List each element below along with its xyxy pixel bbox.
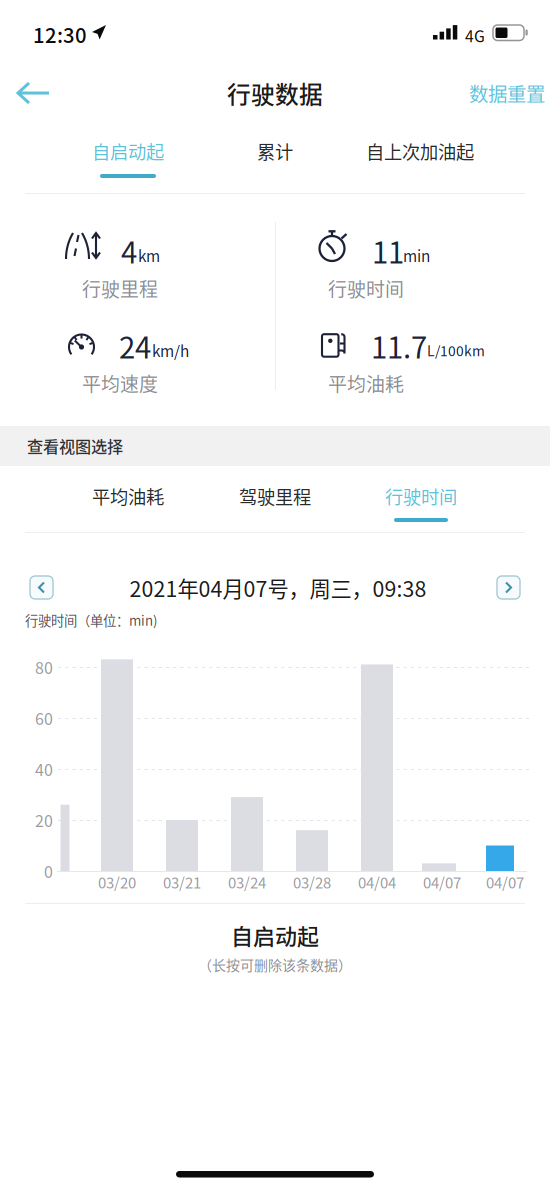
staticText: 行驶时间（单位：min) — [25, 610, 158, 630]
staticText: 03/21 — [163, 871, 201, 893]
staticText: 平均油耗 — [328, 370, 404, 397]
staticText: 2021年04月07号，周三，09:38 — [129, 572, 426, 603]
button[interactable]: 上一条数据 — [30, 576, 53, 599]
staticText: 24 — [119, 324, 151, 367]
staticText: 04/07 — [423, 871, 461, 893]
staticText: 03/20 — [98, 871, 136, 893]
staticText: L/100km — [427, 340, 485, 360]
staticText: 4G — [465, 24, 485, 47]
staticText: 03/28 — [293, 871, 331, 893]
staticText: 行驶时间 — [385, 483, 457, 509]
button[interactable]: 数据重置 — [469, 73, 547, 113]
button[interactable]: 行驶时间 — [0, 0, 220, 45]
button[interactable]: 自启动起 — [0, 0, 220, 46]
button[interactable]: 下一条数据 — [497, 576, 520, 599]
staticText: 04/04 — [358, 871, 396, 893]
button[interactable]: 平均油耗 — [0, 0, 220, 45]
staticText: 40 — [35, 757, 53, 781]
staticText: 60 — [35, 706, 53, 730]
staticText: 11 — [372, 229, 404, 272]
staticText: 驾驶里程 — [239, 483, 311, 509]
button[interactable]: 驾驶里程 — [0, 0, 220, 45]
staticText: 平均速度 — [82, 370, 158, 397]
staticText: 20 — [35, 808, 53, 832]
staticText: 数据重置 — [469, 79, 545, 107]
button[interactable]: 返回 — [3, 67, 65, 119]
staticText: 行驶时间 — [328, 275, 404, 302]
staticText: 0 — [44, 859, 53, 883]
staticText: 自上次加油起 — [366, 138, 474, 164]
staticText: （长按可删除该条数据） — [198, 954, 352, 975]
staticText: 自启动起 — [92, 138, 164, 164]
staticText: 11.7 — [371, 324, 427, 367]
staticText: 行驶里程 — [82, 275, 158, 302]
staticText: 累计 — [257, 138, 293, 164]
staticText: 自启动起 — [231, 919, 319, 951]
staticText: 行驶数据 — [227, 76, 323, 110]
staticText: km/h — [152, 339, 189, 361]
staticText: 03/24 — [228, 871, 266, 893]
button[interactable]: 累计 — [0, 0, 220, 46]
staticText: 04/07 — [486, 871, 524, 893]
staticText: km — [138, 244, 160, 266]
staticText: 平均油耗 — [92, 483, 164, 509]
staticText: 查看视图选择 — [27, 434, 123, 457]
staticText: min — [403, 244, 430, 266]
button[interactable]: 自上次加油起 — [0, 0, 220, 46]
staticText: 4 — [121, 229, 137, 272]
staticText: 12:30 — [33, 19, 87, 49]
staticText: 80 — [35, 655, 53, 679]
